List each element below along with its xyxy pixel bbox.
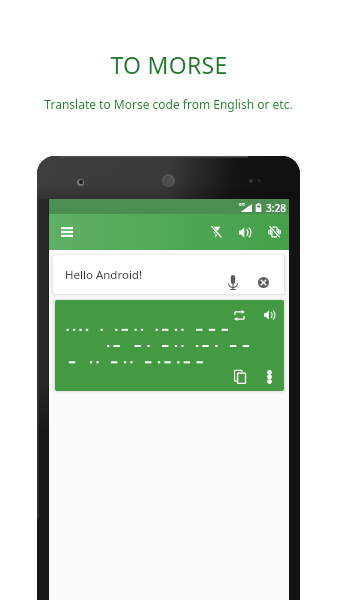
- staticText: Translate to Morse code from English or …: [44, 96, 293, 112]
- button[interactable]: More options: [257, 364, 282, 389]
- staticText: TO MORSE: [110, 49, 228, 80]
- button[interactable]: Play morse sound: [257, 302, 282, 327]
- button[interactable]: Hello Android!: [53, 255, 284, 294]
- button[interactable]: Flash off: [203, 219, 229, 245]
- button[interactable]: Open navigation menu: [54, 219, 80, 245]
- button[interactable]: Sound on: [232, 219, 258, 245]
- button[interactable]: Voice input: [220, 269, 246, 294]
- staticText: Hello Android!: [65, 267, 143, 283]
- button[interactable]: Clear text: [250, 269, 276, 294]
- staticText: 3:28: [266, 201, 286, 215]
- button[interactable]: Swap translation direction: [227, 303, 252, 328]
- button[interactable]: Vibrate off: [261, 219, 287, 245]
- button[interactable]: Copy morse code: [227, 364, 252, 389]
